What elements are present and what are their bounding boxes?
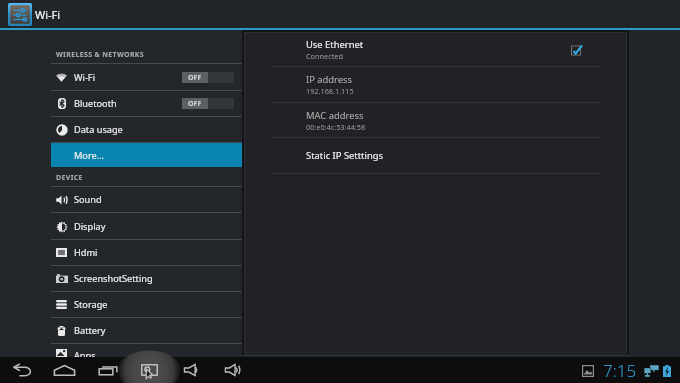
button[interactable]: Back (8, 357, 38, 383)
button[interactable]: Settings app icon (8, 2, 32, 26)
button[interactable]: Volume up (224, 357, 243, 383)
button[interactable]: Battery charging (663, 364, 671, 377)
button[interactable]: Hdmi (51, 240, 242, 265)
staticText: 00:e0:4c:53:44:58 (306, 122, 366, 132)
staticText: Connected (306, 51, 343, 61)
button[interactable]: Sound (51, 187, 242, 212)
staticText: Wi-Fi (74, 71, 96, 84)
button[interactable]: MAC address (271, 103, 601, 137)
staticText: OFF (188, 73, 202, 83)
staticText: Bluetooth (74, 97, 117, 110)
button[interactable]: Screenshot notification (581, 364, 594, 377)
staticText: MAC address (306, 109, 364, 122)
button[interactable]: More... (51, 143, 242, 167)
staticText: Wi-Fi (35, 7, 61, 22)
button[interactable]: Ethernet connected (644, 365, 659, 377)
button[interactable]: Screenshot (140, 357, 159, 383)
staticText: ScreenshotSetting (74, 272, 153, 285)
button[interactable]: Data usage (51, 117, 242, 142)
button[interactable]: IP address (271, 67, 601, 102)
staticText: WIRELESS & NETWORKS (56, 50, 145, 60)
button[interactable]: Static IP Setttings (271, 138, 601, 173)
button[interactable]: Use Ethernet (271, 33, 601, 66)
staticText: Battery (74, 324, 106, 337)
staticText: More... (74, 149, 105, 162)
staticText: IP address (306, 73, 353, 86)
button[interactable]: Use Ethernet toggle (566, 39, 588, 61)
staticText: Hdmi (74, 246, 98, 259)
button[interactable]: Bluetooth (51, 91, 242, 116)
staticText: OFF (188, 99, 202, 109)
staticText: Data usage (74, 123, 123, 136)
staticText: DEVICE (56, 173, 83, 183)
button[interactable]: Wi-Fi (51, 64, 242, 90)
button[interactable]: Battery (51, 318, 242, 343)
staticText: Apps (74, 349, 96, 357)
staticText: 192.168.1.115 (306, 86, 354, 96)
button[interactable]: Home (52, 357, 76, 383)
staticText: Storage (74, 298, 108, 311)
staticText: Static IP Setttings (306, 149, 384, 162)
staticText: 7:15 (603, 359, 637, 382)
button[interactable]: ScreenshotSetting (51, 266, 242, 291)
button[interactable]: Apps (51, 344, 242, 357)
button[interactable]: Display (51, 213, 242, 239)
staticText: Sound (74, 193, 102, 206)
button[interactable]: Storage (51, 292, 242, 317)
staticText: Display (74, 220, 106, 233)
button[interactable]: Volume down (183, 357, 200, 383)
staticText: Use Ethernet (306, 38, 364, 51)
button[interactable]: Recents (97, 357, 118, 383)
